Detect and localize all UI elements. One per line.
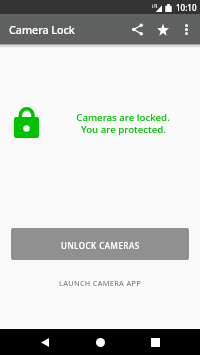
button[interactable]: More options xyxy=(175,14,197,44)
button[interactable]: UNLOCK CAMERAS xyxy=(11,228,189,260)
button[interactable]: LAUNCH CAMERA APP xyxy=(11,269,189,293)
button[interactable]: Home xyxy=(78,329,122,355)
staticText: Camera Lock xyxy=(9,23,75,38)
staticText: You are protected. xyxy=(81,123,166,136)
staticText: UNLOCK CAMERAS xyxy=(61,240,140,251)
staticText: Cameras are locked. xyxy=(76,111,170,124)
button[interactable]: Favorite xyxy=(150,14,175,44)
button[interactable]: Recents xyxy=(133,329,177,355)
staticText: 10:10 xyxy=(176,2,197,13)
staticText: LAUNCH CAMERA APP xyxy=(59,278,141,288)
button[interactable]: Share xyxy=(125,14,150,44)
button[interactable]: Back xyxy=(23,329,67,355)
